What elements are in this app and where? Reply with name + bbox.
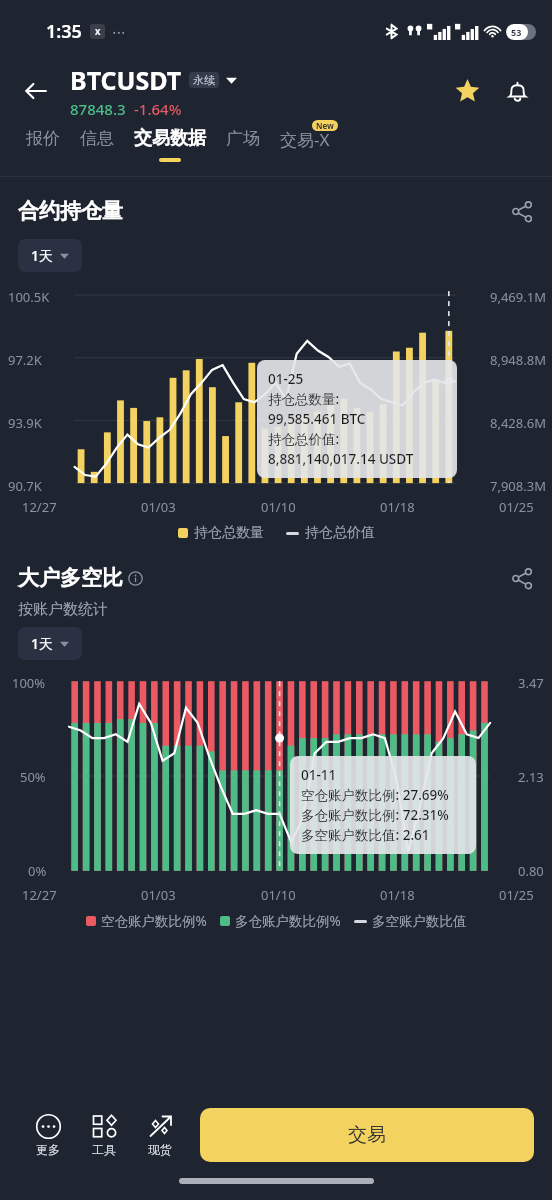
staticText: 93.9K <box>8 414 42 432</box>
staticText: 按账户数统计 <box>18 600 108 619</box>
staticText: 12/27 <box>22 498 57 516</box>
button[interactable]: Share <box>502 558 542 598</box>
staticText: 50% <box>20 768 46 786</box>
staticText: 更多 <box>36 1142 60 1157</box>
staticText: 多仓账户数比例: 72.31% <box>301 806 449 824</box>
button[interactable]: 交易-X <box>270 126 340 151</box>
staticText: 8,948.8M <box>490 351 546 369</box>
staticText: 01/18 <box>380 886 415 904</box>
staticText: 现货 <box>148 1142 172 1157</box>
staticText: 持仓总数量 <box>194 524 264 542</box>
staticText: 报价 <box>26 128 60 149</box>
staticText: -1.64% <box>134 99 182 119</box>
staticText: 交易 <box>348 1123 386 1147</box>
staticText: ⋯ <box>112 24 126 40</box>
staticText: 01/10 <box>261 498 296 516</box>
button[interactable]: Notifications <box>496 70 538 112</box>
staticText: 持仓总数量: <box>268 390 340 408</box>
staticText: 8,428.6M <box>490 414 546 432</box>
button[interactable]: 报价 <box>16 126 70 157</box>
button[interactable]: Back <box>14 69 58 113</box>
staticText: 1:35 <box>46 19 82 44</box>
staticText: 01/25 <box>499 498 534 516</box>
staticText: 87848.3 <box>70 99 126 119</box>
staticText: 2.13 <box>518 768 544 786</box>
staticText: 交易-X <box>280 128 330 151</box>
button[interactable]: 工具 <box>76 1110 132 1161</box>
staticText: 持仓总价值 <box>305 524 375 542</box>
staticText: 01/03 <box>141 886 176 904</box>
staticText: X <box>95 26 101 37</box>
staticText: BTCUSDT <box>70 63 182 97</box>
staticText: 多空账户数比值 <box>372 913 467 930</box>
staticText: 空仓账户数比例: 27.69% <box>301 786 449 804</box>
button[interactable]: 信息 <box>70 126 124 157</box>
button[interactable]: 1天 <box>18 239 82 272</box>
staticText: 100.5K <box>8 288 50 306</box>
button[interactable]: Share <box>502 191 542 231</box>
staticText: 0% <box>28 862 47 880</box>
staticText: 7,908.3M <box>490 477 546 495</box>
staticText: 97.2K <box>8 351 42 369</box>
staticText: 12/27 <box>22 886 57 904</box>
staticText: 01-25 <box>268 370 304 388</box>
staticText: 永续 <box>193 73 215 87</box>
button[interactable]: 现货 <box>132 1110 188 1161</box>
staticText: 广场 <box>226 128 260 149</box>
button[interactable]: 更多 <box>20 1110 76 1161</box>
button[interactable]: 广场 <box>216 126 270 157</box>
staticText: New <box>316 120 334 131</box>
button[interactable]: Favorite <box>446 70 488 112</box>
staticText: 多空账户数比值: 2.61 <box>301 826 430 844</box>
staticText: 01/25 <box>499 886 534 904</box>
staticText: 信息 <box>80 128 114 149</box>
staticText: 1天 <box>31 634 54 653</box>
button[interactable]: 交易数据 <box>124 126 216 162</box>
staticText: 大户多空比 <box>18 565 123 591</box>
staticText: 90.7K <box>8 477 42 495</box>
staticText: 合约持仓量 <box>18 198 123 224</box>
button[interactable]: 1天 <box>18 627 82 660</box>
staticText: 53 <box>511 26 522 38</box>
staticText: 0.80 <box>518 862 544 880</box>
staticText: 3.47 <box>518 674 544 692</box>
staticText: 01/18 <box>380 498 415 516</box>
staticText: 交易数据 <box>134 127 206 150</box>
staticText: 持仓总价值: <box>268 430 340 448</box>
staticText: 空仓账户数比例% <box>101 912 207 930</box>
staticText: 99,585.461 BTC <box>268 410 366 428</box>
staticText: 100% <box>12 674 46 692</box>
button[interactable]: 交易 <box>200 1108 534 1162</box>
staticText: 8,881,140,017.14 USDT <box>268 450 414 468</box>
staticText: 01-11 <box>301 766 337 784</box>
staticText: 1天 <box>31 246 54 265</box>
staticText: 9,469.1M <box>490 288 546 306</box>
staticText: 01/10 <box>261 886 296 904</box>
staticText: 工具 <box>92 1142 116 1157</box>
staticText: 多仓账户数比例% <box>235 912 341 930</box>
staticText: 01/03 <box>141 498 176 516</box>
